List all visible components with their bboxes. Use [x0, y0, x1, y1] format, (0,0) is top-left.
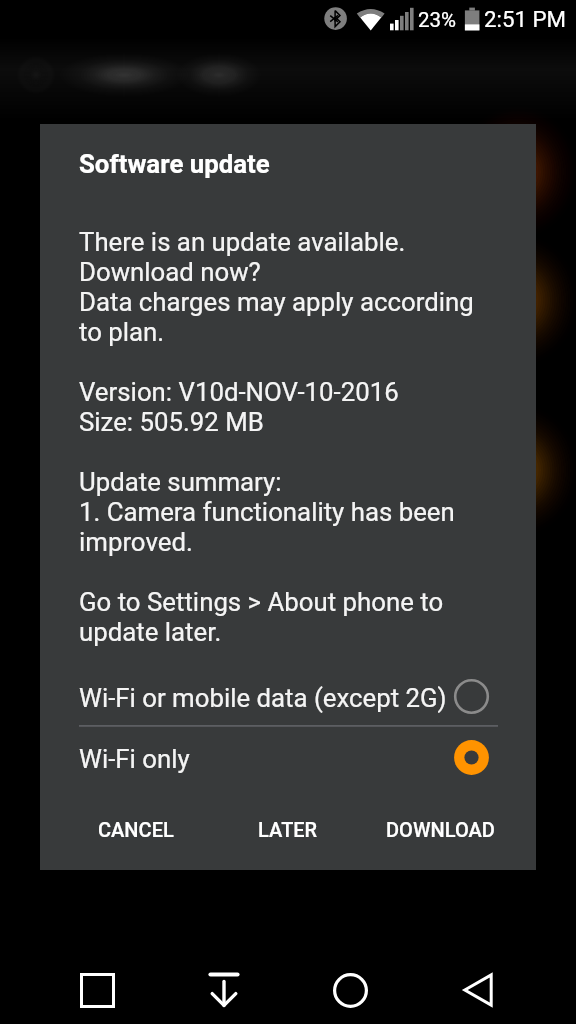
- button[interactable]: Home: [333, 973, 368, 1008]
- button[interactable]: Recents: [80, 973, 115, 1008]
- staticText: Software update: [79, 149, 270, 179]
- staticText: 23%: [418, 8, 457, 32]
- button[interactable]: Wi-Fi only: [75, 730, 500, 784]
- staticText: Wi-Fi only: [79, 744, 190, 774]
- staticText: 2:51 PM: [484, 6, 567, 32]
- staticText: There is an update available. Download n…: [79, 227, 474, 647]
- staticText: CANCEL: [98, 818, 174, 841]
- button[interactable]: CANCEL: [59, 804, 212, 854]
- button[interactable]: Back: [462, 972, 494, 1004]
- button[interactable]: Wi-Fi or mobile data (except 2G): [75, 670, 500, 724]
- staticText: DOWNLOAD: [386, 818, 495, 841]
- button[interactable]: Hide keyboard: [206, 972, 242, 1008]
- button[interactable]: DOWNLOAD: [364, 804, 516, 854]
- staticText: Wi-Fi or mobile data (except 2G): [79, 683, 447, 713]
- staticText: LATER: [258, 818, 318, 841]
- button[interactable]: LATER: [212, 804, 364, 854]
